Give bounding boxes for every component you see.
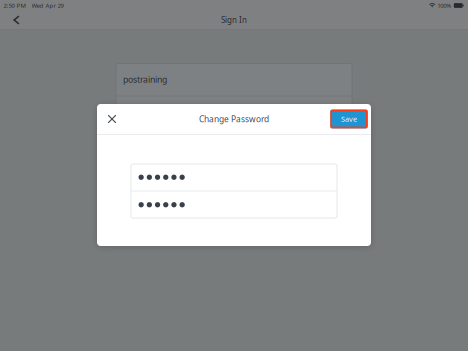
button[interactable]: Close <box>97 104 127 134</box>
button[interactable]: Save <box>330 110 368 128</box>
staticText: Wed Apr 29 <box>31 1 63 10</box>
staticText: 2:50 PM <box>3 1 25 10</box>
staticText: Sign In <box>221 15 247 25</box>
staticText: Save <box>341 114 357 124</box>
staticText: Change Password <box>199 113 269 125</box>
staticText: postraining <box>123 74 167 85</box>
staticText: 100% <box>437 1 451 10</box>
button[interactable]: Back <box>0 11 33 29</box>
